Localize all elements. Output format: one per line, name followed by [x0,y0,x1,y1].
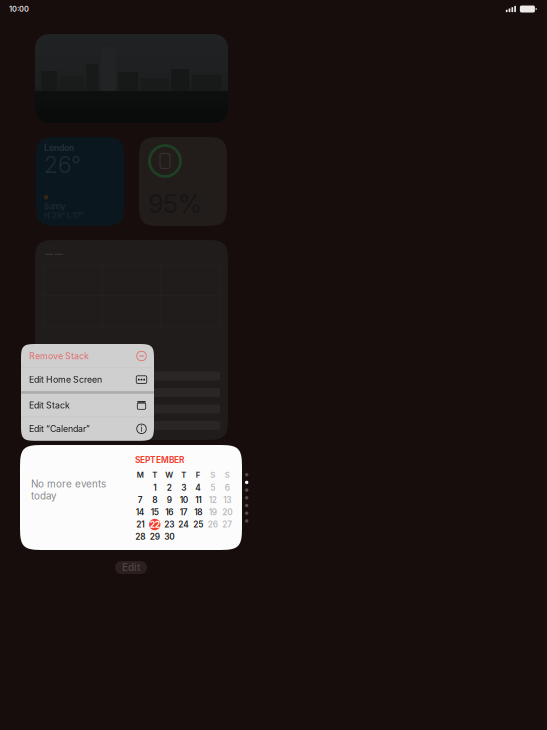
staticText: 3 [181,483,186,493]
staticText: 13 [223,495,231,505]
staticText: 17 [180,507,188,517]
staticText: 19 [209,507,217,517]
staticText: S [225,470,230,480]
staticText: 5 [210,483,215,493]
staticText: 25 [193,520,203,530]
staticText: 22 [150,519,160,530]
staticText: 2 [167,483,172,493]
staticText: Remove Stack [29,351,89,361]
staticText: Edit “Calendar” [29,423,90,434]
staticText: 8 [152,495,157,505]
staticText: 95% [148,188,202,219]
staticText: H:29° L:17° [44,211,83,220]
staticText: Edit [122,561,140,573]
staticText: 14 [136,507,145,517]
staticText: No more events today [31,478,106,502]
staticText: 24 [178,520,189,530]
staticText: 6 [225,483,230,493]
staticText: 21 [136,520,144,530]
staticText: M [137,470,144,480]
staticText: 9 [167,495,172,505]
staticText: 26 [208,520,218,530]
staticText: S [210,470,215,480]
staticText: W [165,470,173,480]
staticText: 10:00 [9,4,29,13]
staticText: SEPTEMBER [135,455,184,465]
staticText: 1 [153,483,156,493]
staticText: 23 [164,520,174,530]
staticText: i [140,424,142,434]
staticText: — — [45,249,63,259]
staticText: 4 [195,483,201,493]
staticText: F [196,470,201,480]
staticText: Sunny [44,202,65,211]
staticText: 16 [165,507,173,517]
button[interactable]: Remove Stack [21,344,154,367]
staticText: 10 [180,495,188,505]
staticText: Edit Stack [29,400,70,410]
staticText: T [181,470,186,480]
staticText: 15 [151,507,159,517]
button[interactable]: Edit Home Screen [21,368,154,391]
button[interactable]: Edit “Calendar” [21,417,154,440]
button[interactable]: Edit Stack [21,394,154,417]
button[interactable]: Edit [115,561,147,574]
staticText: 11 [195,495,201,505]
staticText: 12 [209,495,217,505]
staticText: London [44,143,74,153]
staticText: T [152,470,157,480]
staticText: Edit Home Screen [29,374,102,385]
staticText: 30 [164,532,174,542]
staticText: 20 [222,507,232,517]
staticText: 18 [194,507,202,517]
staticText: 26° [44,151,81,178]
staticText: 7 [138,495,143,505]
staticText: 28 [135,532,145,542]
staticText: 27 [222,520,232,530]
staticText: 29 [150,532,160,542]
